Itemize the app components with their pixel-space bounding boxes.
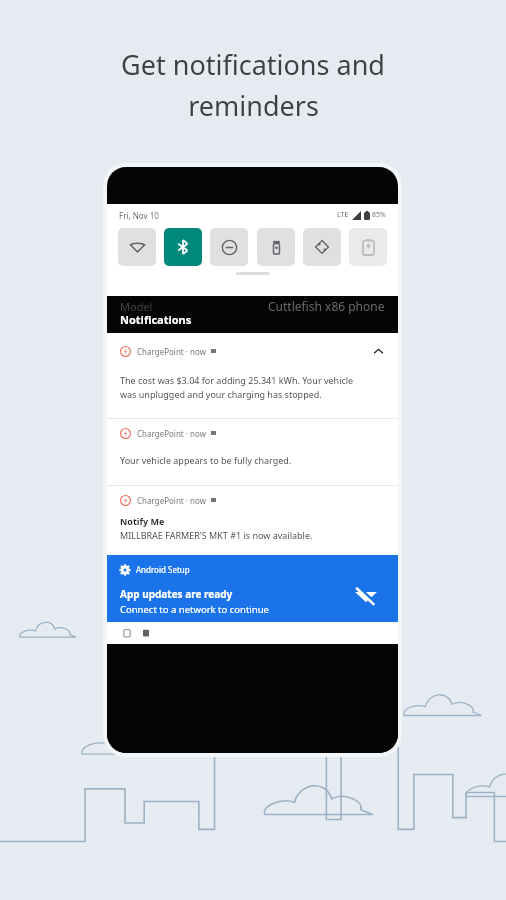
staticText: Android Setup [136,564,190,575]
button[interactable]: Quick setting [349,228,387,266]
staticText: Your vehicle appears to be fully charged… [120,454,292,466]
staticText: Model [120,299,153,314]
button[interactable]: Quick setting [303,228,341,266]
staticText: Fri, Nov 10 [119,210,159,221]
button[interactable]: ChargePoint · now [107,486,398,555]
staticText: Connect to a network to continue [120,603,269,616]
staticText: Notifications [120,312,192,327]
staticText: ChargePoint · now [137,495,206,506]
button[interactable]: Collapse notification [369,342,387,360]
button[interactable]: Battery saver [121,627,133,639]
staticText: Cuttlefish x86 phone [268,298,385,314]
staticText: Notify Me [120,515,165,527]
staticText: ChargePoint · now [137,346,206,357]
staticText: 85% [372,210,386,220]
staticText: ChargePoint · now [137,428,206,439]
other: No network [352,581,380,609]
button[interactable]: Quick setting [257,228,295,266]
button[interactable]: Quick setting [118,228,156,266]
staticText: The cost was $3.04 for adding 25.341 kWh… [120,374,354,401]
button[interactable]: Quick setting [164,228,202,266]
staticText: Get notifications and [121,46,385,83]
button[interactable]: ChargePoint · now [107,333,398,418]
staticText: App updates are ready [120,587,233,601]
staticText: MILLBRAE FARMER'S MKT #1 is now availabl… [120,529,313,541]
button[interactable]: Quick setting [210,228,248,266]
staticText: LTE [337,210,349,220]
button[interactable]: Android Setup [107,555,398,622]
button[interactable]: ChargePoint · now [107,419,398,485]
staticText: reminders [188,87,319,124]
button[interactable]: Storage [140,627,152,639]
